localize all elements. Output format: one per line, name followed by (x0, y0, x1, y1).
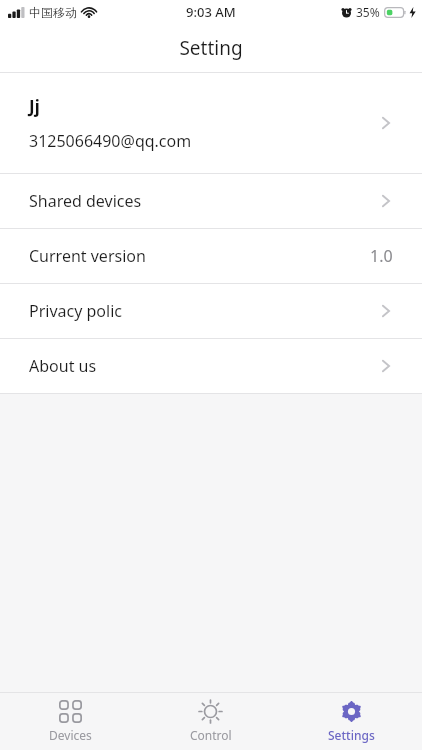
staticText: 1.0 (370, 245, 393, 267)
staticText: 3125066490@qq.com (29, 130, 192, 152)
staticText: Control (190, 727, 232, 743)
button[interactable]: Control (140, 700, 281, 743)
staticText: 9:03 AM (186, 3, 236, 21)
staticText: Shared devices (29, 190, 379, 212)
staticText: Current version (29, 245, 370, 267)
staticText: Setting (179, 35, 243, 61)
staticText: Jj (29, 95, 40, 118)
staticText: 中国移动 (29, 5, 77, 20)
staticText: 35% (356, 4, 380, 20)
button[interactable]: Shared devices (0, 174, 422, 228)
staticText: Settings (328, 727, 375, 743)
staticText: Devices (49, 727, 92, 743)
button[interactable]: Devices (0, 700, 140, 743)
button[interactable]: Settings (281, 700, 422, 743)
button[interactable]: About us (0, 339, 422, 393)
button[interactable]: Current version (0, 229, 422, 283)
staticText: About us (29, 355, 379, 377)
button[interactable]: Privacy polic (0, 284, 422, 338)
button[interactable]: Jj (0, 73, 422, 173)
staticText: Privacy polic (29, 300, 379, 322)
